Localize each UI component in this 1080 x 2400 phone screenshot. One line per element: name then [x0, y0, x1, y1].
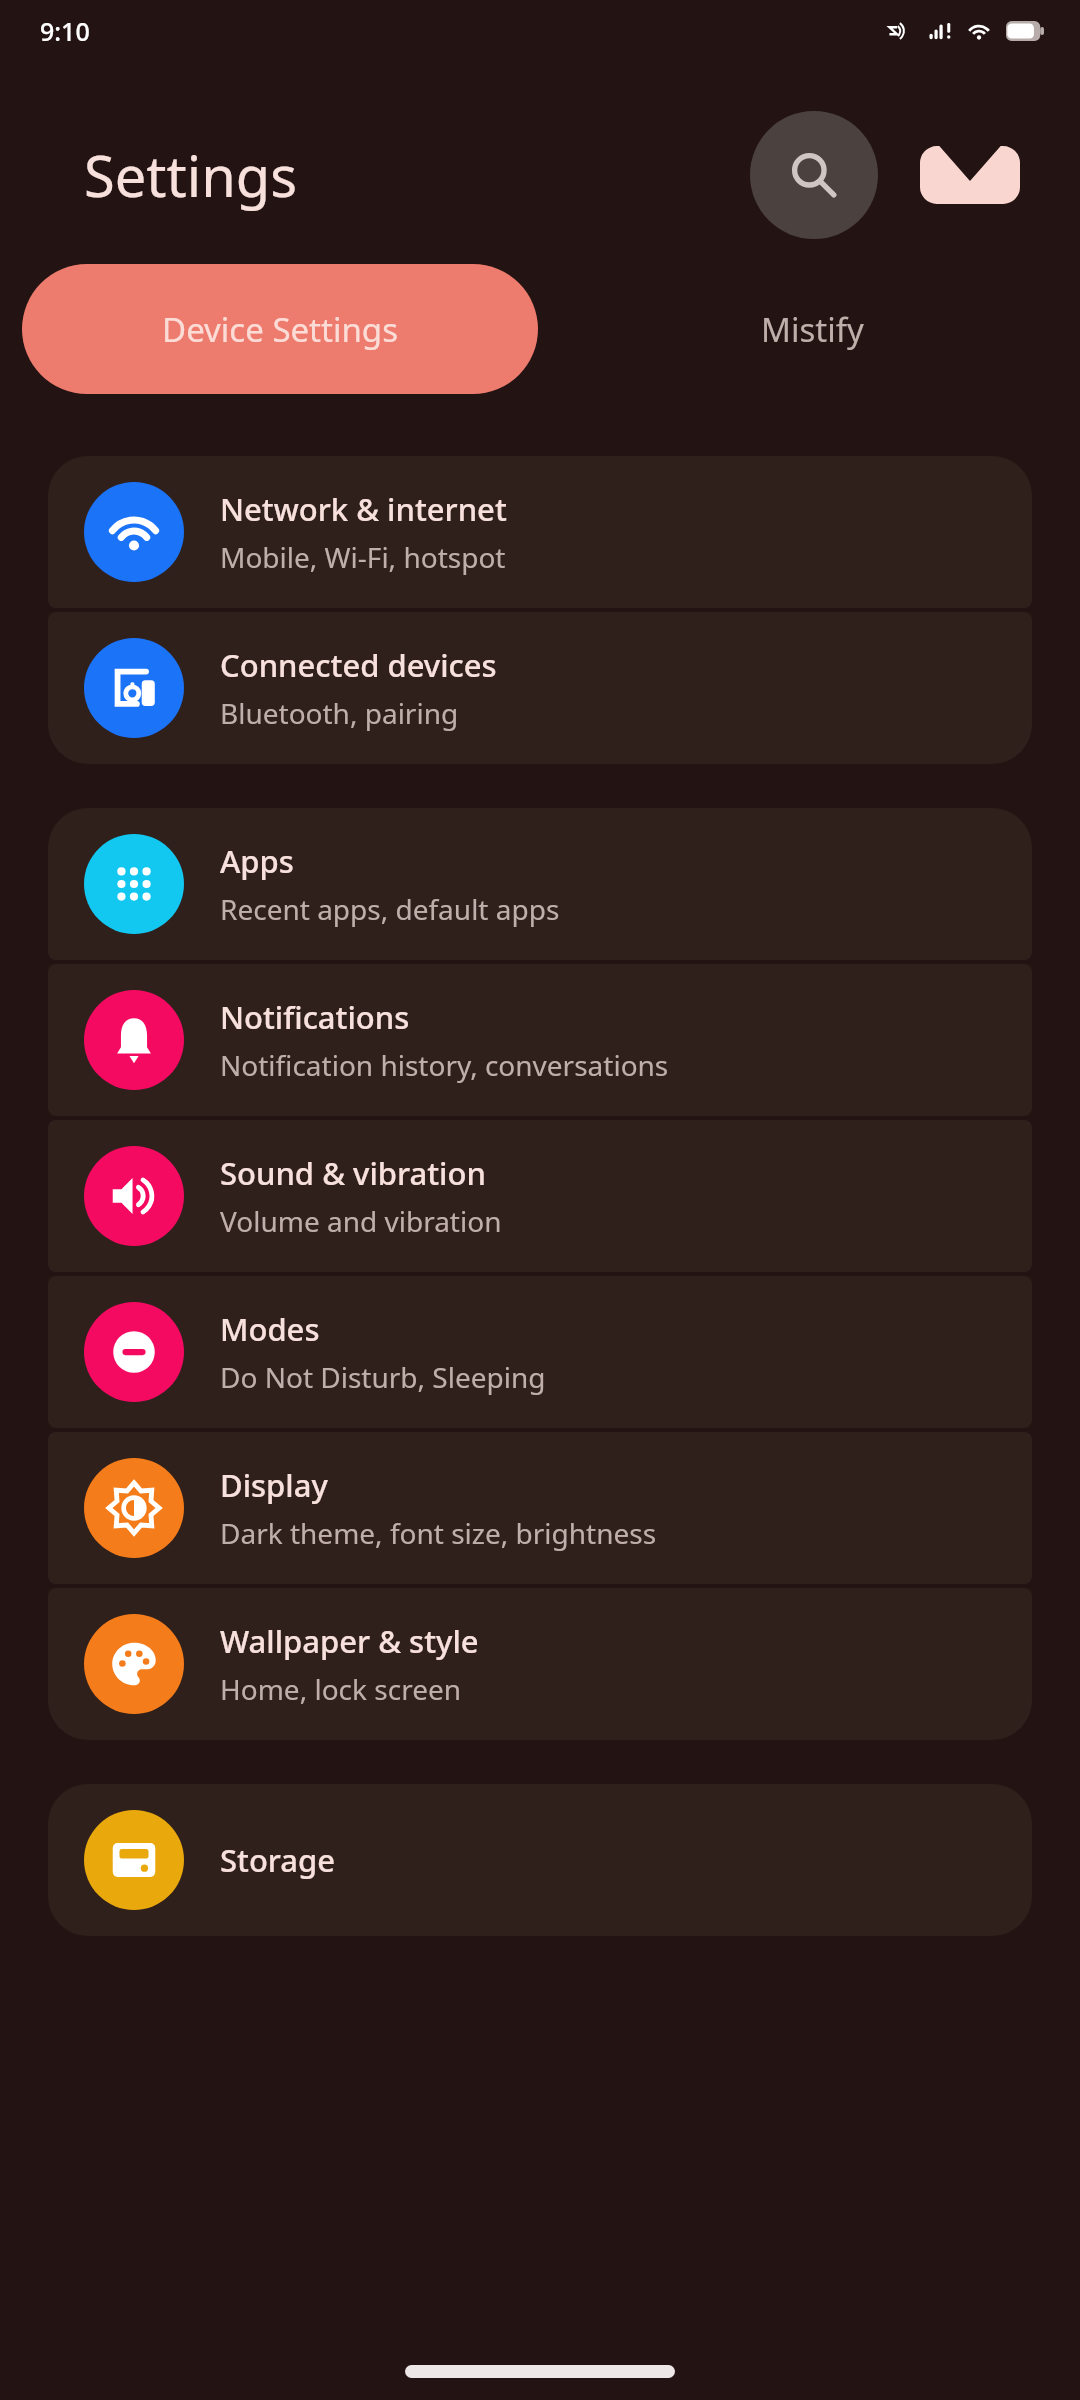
button[interactable]: Device Settings — [22, 264, 538, 394]
button[interactable]: Display — [48, 1432, 1032, 1584]
staticText: Storage — [220, 1839, 336, 1881]
button[interactable]: Sound & vibration — [48, 1120, 1032, 1272]
button[interactable]: Notifications — [48, 964, 1032, 1116]
staticText: Connected devices — [220, 644, 497, 686]
staticText: Volume and vibration — [220, 1202, 502, 1240]
staticText: Do Not Disturb, Sleeping — [220, 1358, 546, 1396]
button[interactable]: Apps — [48, 808, 1032, 960]
staticText: Recent apps, default apps — [220, 890, 560, 928]
staticText: Notifications — [220, 996, 410, 1038]
staticText: Wallpaper & style — [220, 1620, 479, 1662]
button[interactable]: Mistify — [562, 264, 1062, 394]
staticText: Settings — [84, 137, 298, 213]
staticText: Home, lock screen — [220, 1670, 462, 1708]
button[interactable]: Account — [920, 137, 1020, 213]
button[interactable]: Wallpaper & style — [48, 1588, 1032, 1740]
button[interactable]: Storage — [48, 1784, 1032, 1936]
staticText: Dark theme, font size, brightness — [220, 1514, 657, 1552]
staticText: Bluetooth, pairing — [220, 694, 459, 732]
staticText: Apps — [220, 840, 294, 882]
staticText: Notification history, conversations — [220, 1046, 669, 1084]
staticText: Device Settings — [162, 307, 398, 352]
button[interactable]: Search settings — [750, 111, 878, 239]
button[interactable]: Modes — [48, 1276, 1032, 1428]
staticText: Display — [220, 1464, 328, 1506]
staticText: Mobile, Wi-Fi, hotspot — [220, 538, 506, 576]
staticText: Network & internet — [220, 488, 507, 530]
staticText: Modes — [220, 1308, 320, 1350]
staticText: Sound & vibration — [220, 1152, 486, 1194]
button[interactable]: Network & internet — [48, 456, 1032, 608]
button[interactable]: Connected devices — [48, 612, 1032, 764]
staticText: Mistify — [761, 307, 864, 352]
staticText: 9:10 — [40, 14, 90, 48]
